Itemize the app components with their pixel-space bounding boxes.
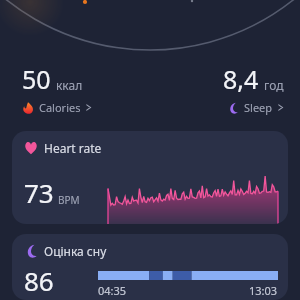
staticText: ккал: [56, 77, 83, 93]
button[interactable]: 8,4: [150, 60, 300, 115]
staticText: год: [264, 77, 284, 93]
button[interactable]: Heart rate: [12, 131, 288, 224]
staticText: 04:35: [98, 283, 127, 298]
staticText: 86: [24, 263, 54, 298]
staticText: Sleep: [244, 100, 273, 115]
button[interactable]: 50: [0, 60, 150, 115]
staticText: Оцінка сну: [44, 243, 107, 259]
staticText: Heart rate: [44, 140, 102, 156]
staticText: 50: [22, 62, 51, 96]
staticText: Calories: [39, 100, 81, 115]
staticText: BPM: [58, 193, 80, 207]
staticText: 13:03: [249, 283, 278, 298]
staticText: 8,4: [223, 62, 259, 96]
button[interactable]: Оцінка сну: [12, 234, 288, 300]
staticText: 73: [24, 175, 54, 210]
